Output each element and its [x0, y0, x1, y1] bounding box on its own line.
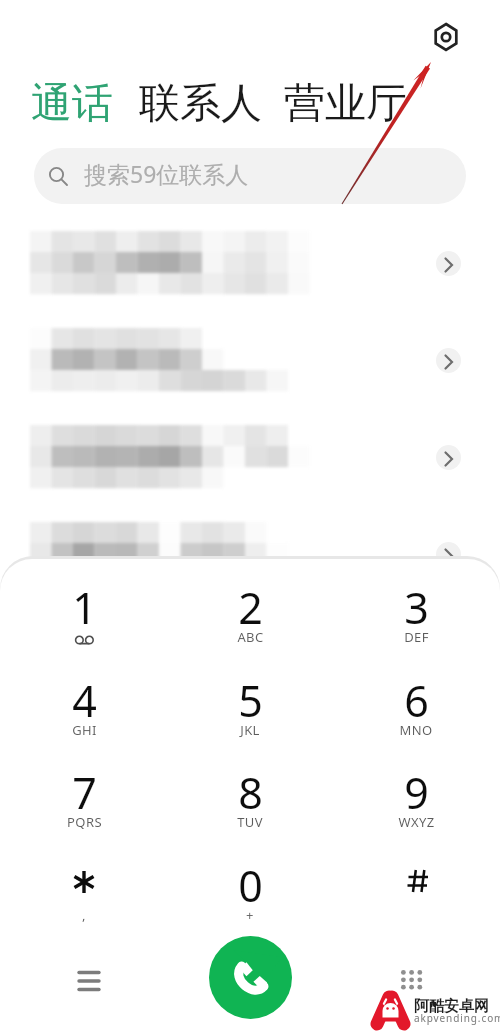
staticText: 联系人 [139, 78, 262, 130]
button[interactable]: 4 [20, 671, 148, 757]
button[interactable]: Open contact [436, 542, 461, 567]
staticText: 7 [72, 763, 97, 822]
button[interactable]: Open contact [436, 445, 461, 470]
button[interactable]: More options [60, 951, 118, 1009]
button[interactable]: Call [209, 936, 292, 1019]
button[interactable]: 5 [186, 671, 314, 757]
button[interactable]: 搜索59位联系人 [34, 148, 466, 204]
button[interactable]: 8 [186, 763, 314, 849]
staticText: + [246, 906, 254, 924]
staticText: , [82, 906, 86, 924]
staticText: 通话 [31, 78, 113, 130]
button[interactable]: 3 [352, 578, 480, 664]
button[interactable]: , [20, 856, 148, 942]
button[interactable]: 2 [186, 578, 314, 664]
button[interactable]: 7 [20, 763, 148, 849]
staticText: 4 [72, 671, 97, 730]
staticText: 8 [238, 763, 263, 822]
staticText: 营业厅 [284, 78, 407, 130]
button[interactable] [352, 856, 480, 942]
button[interactable]: Open contact [436, 251, 461, 276]
staticText: 3 [404, 578, 429, 637]
button[interactable]: Settings [425, 16, 467, 58]
staticText: MNO [399, 721, 433, 739]
button[interactable]: 6 [352, 671, 480, 757]
staticText: DEF [404, 628, 429, 646]
button[interactable]: Open contact [436, 348, 461, 373]
staticText: WXYZ [398, 813, 435, 831]
staticText: 6 [404, 671, 429, 730]
staticText: 2 [238, 578, 263, 637]
staticText: 阿酷安卓网 [414, 997, 489, 1016]
staticText: akpvending.com [414, 1011, 500, 1025]
button[interactable]: 0 [186, 856, 314, 942]
staticText: 9 [404, 763, 429, 822]
button[interactable]: 9 [352, 763, 480, 849]
staticText: GHI [72, 721, 97, 739]
staticText: 0 [238, 856, 263, 915]
staticText: JKL [240, 721, 260, 739]
button[interactable]: 1 [20, 578, 148, 664]
staticText: TUV [237, 813, 263, 831]
staticText: 5 [238, 671, 263, 730]
staticText: 1 [72, 578, 97, 637]
staticText: PQRS [67, 813, 102, 831]
button[interactable]: Keypad [382, 951, 440, 1009]
staticText: ABC [237, 628, 264, 646]
staticText: 搜索59位联系人 [84, 158, 249, 189]
